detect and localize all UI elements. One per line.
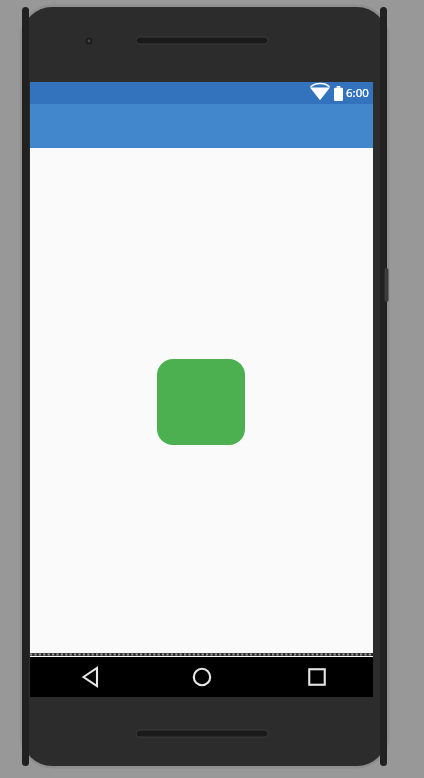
button[interactable]: Home (179, 657, 225, 697)
button[interactable]: Recent apps (294, 657, 340, 697)
staticText: 6:00 (346, 85, 369, 101)
button[interactable]: Back (68, 657, 114, 697)
button[interactable] (157, 359, 245, 445)
